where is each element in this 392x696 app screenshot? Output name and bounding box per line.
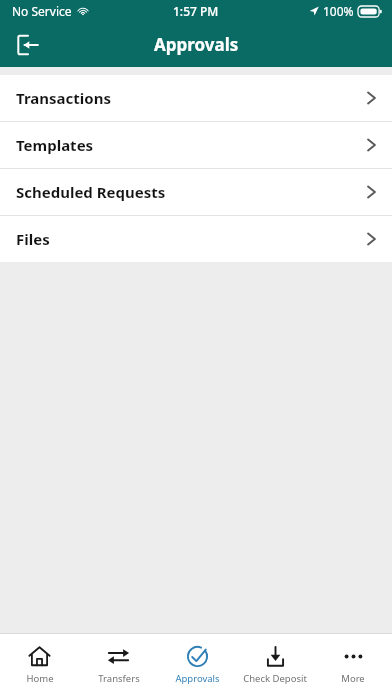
staticText: Templates bbox=[16, 135, 94, 155]
button[interactable]: Check Deposit bbox=[236, 634, 314, 696]
button[interactable]: Templates bbox=[0, 122, 392, 168]
button[interactable]: Scheduled Requests bbox=[0, 169, 392, 215]
staticText: 100% bbox=[323, 3, 354, 19]
staticText: 1:57 PM bbox=[173, 3, 219, 19]
staticText: Check Deposit bbox=[243, 672, 307, 685]
staticText: Approvals bbox=[154, 33, 239, 56]
staticText: Home bbox=[26, 672, 54, 685]
button[interactable]: Home bbox=[0, 634, 79, 696]
button[interactable]: Log out bbox=[8, 25, 48, 65]
button[interactable]: More bbox=[314, 634, 392, 696]
button[interactable]: Approvals bbox=[158, 634, 236, 696]
staticText: More bbox=[341, 672, 365, 685]
staticText: Scheduled Requests bbox=[16, 182, 166, 202]
button[interactable]: Files bbox=[0, 216, 392, 262]
staticText: Files bbox=[16, 229, 50, 249]
button[interactable]: Transactions bbox=[0, 75, 392, 121]
staticText: No Service bbox=[12, 3, 72, 19]
staticText: Transfers bbox=[98, 672, 140, 685]
staticText: Approvals bbox=[175, 672, 220, 685]
button[interactable]: Transfers bbox=[79, 634, 158, 696]
staticText: Transactions bbox=[16, 88, 111, 108]
